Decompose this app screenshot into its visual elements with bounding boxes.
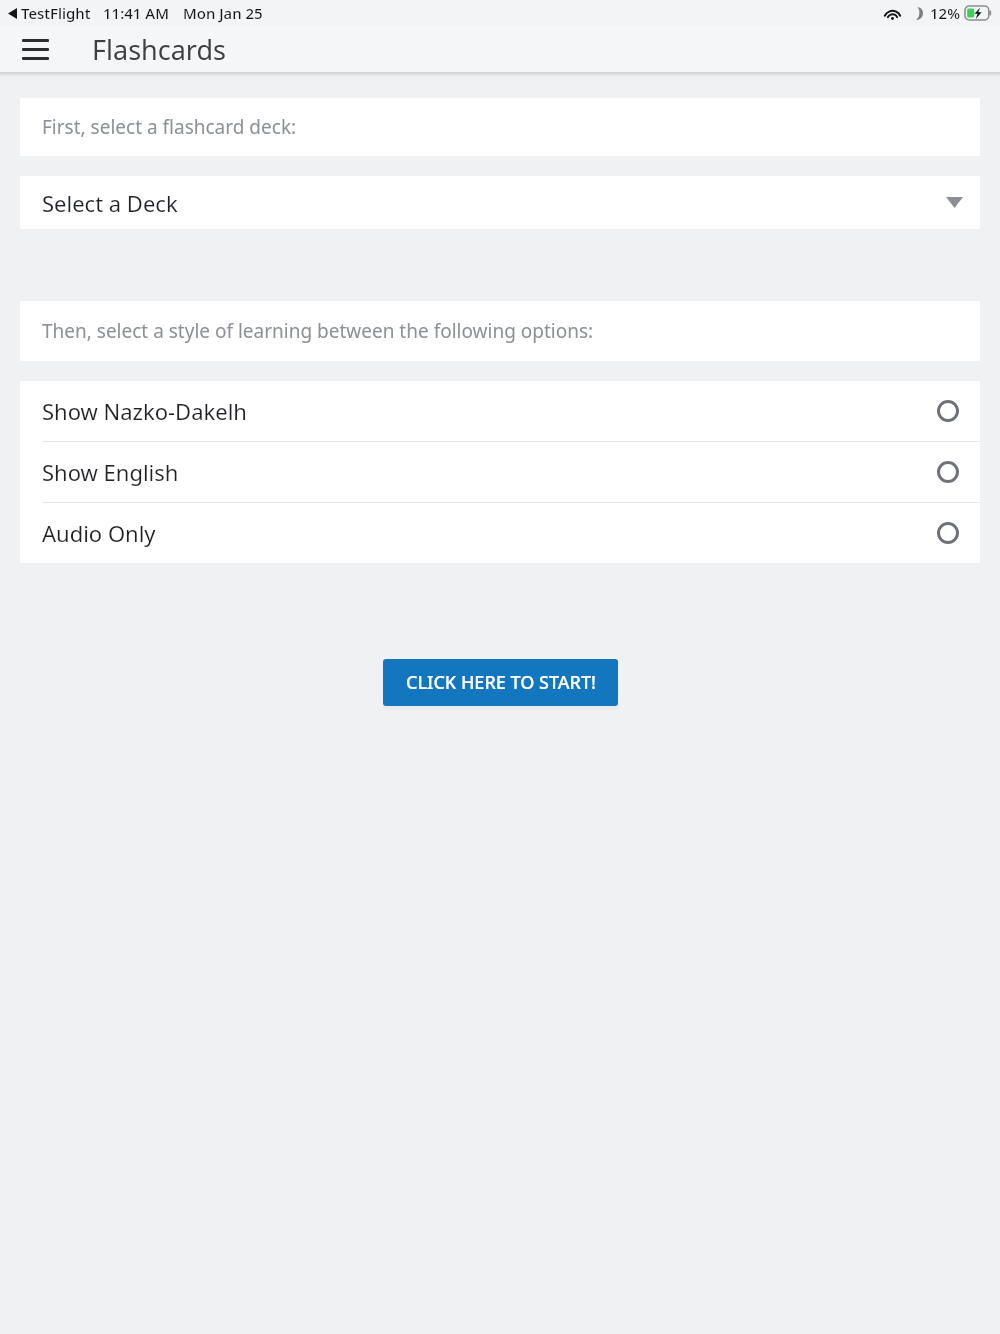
staticText: Select a Deck	[42, 188, 178, 218]
staticText: First, select a flashcard deck:	[42, 114, 297, 140]
button[interactable]: Select a Deck	[20, 176, 980, 229]
staticText: 11:41 AM	[103, 3, 169, 23]
button[interactable]: Show English	[20, 442, 980, 502]
staticText: Show Nazko-Dakelh	[42, 396, 247, 426]
button[interactable]: Open navigation menu	[14, 28, 56, 70]
staticText: 12%	[930, 3, 960, 23]
staticText: Then, select a style of learning between…	[42, 318, 594, 344]
staticText: Flashcards	[92, 31, 227, 68]
staticText: TestFlight	[21, 3, 91, 23]
button[interactable]: Show Nazko-Dakelh	[20, 381, 980, 441]
staticText: Audio Only	[42, 518, 156, 548]
staticText: CLICK HERE TO START!	[406, 670, 596, 695]
button[interactable]: Audio Only	[20, 503, 980, 563]
button[interactable]: CLICK HERE TO START!	[383, 659, 618, 706]
staticText: Mon Jan 25	[183, 3, 263, 23]
staticText: Show English	[42, 457, 179, 487]
